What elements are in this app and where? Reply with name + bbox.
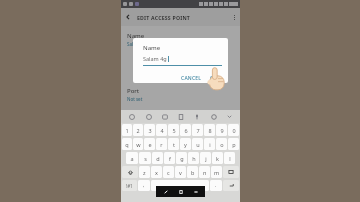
staticText: Port bbox=[127, 87, 140, 95]
button[interactable]: Sticker bbox=[160, 112, 170, 122]
button[interactable]: c bbox=[163, 166, 174, 178]
button[interactable]: Settings bbox=[209, 112, 219, 122]
button[interactable]: p bbox=[228, 138, 239, 150]
button[interactable]: Keyboard bbox=[127, 112, 137, 122]
button[interactable]: l bbox=[224, 152, 235, 164]
button[interactable]: Space bbox=[151, 180, 209, 191]
staticText: 1 bbox=[125, 127, 129, 134]
staticText: !#1 bbox=[126, 183, 133, 189]
button[interactable]: Backspace bbox=[223, 166, 239, 178]
button[interactable]: Back bbox=[190, 186, 201, 197]
button[interactable]: More options bbox=[228, 11, 240, 23]
button[interactable]: Emoji bbox=[144, 112, 154, 122]
staticText: t bbox=[173, 141, 175, 148]
button[interactable]: n bbox=[199, 166, 210, 178]
button[interactable]: q bbox=[122, 138, 132, 150]
button[interactable]: v bbox=[175, 166, 186, 178]
staticText: u bbox=[196, 141, 200, 148]
button[interactable]: CANCEL bbox=[177, 73, 206, 83]
staticText: OK bbox=[210, 75, 218, 81]
button[interactable]: Recents bbox=[160, 186, 171, 197]
staticText: e bbox=[148, 141, 152, 148]
button[interactable]: 4 bbox=[156, 124, 167, 136]
button[interactable]: 1 bbox=[122, 124, 132, 136]
staticText: n bbox=[203, 169, 207, 176]
button[interactable]: a bbox=[126, 152, 138, 164]
button[interactable]: g bbox=[176, 152, 187, 164]
button[interactable]: 7 bbox=[192, 124, 203, 136]
staticText: a bbox=[130, 155, 134, 162]
staticText: x bbox=[155, 169, 158, 176]
button[interactable]: z bbox=[139, 166, 150, 178]
button[interactable]: . bbox=[210, 180, 222, 191]
button[interactable]: 8 bbox=[204, 124, 215, 136]
staticText: i bbox=[209, 141, 211, 148]
button[interactable]: Salam 4g bbox=[143, 55, 222, 62]
staticText: 4 bbox=[160, 127, 164, 134]
button[interactable]: m bbox=[211, 166, 222, 178]
button[interactable]: k bbox=[212, 152, 223, 164]
button[interactable]: d bbox=[152, 152, 163, 164]
staticText: m bbox=[214, 169, 220, 176]
button[interactable]: Hide keyboard bbox=[225, 112, 234, 121]
staticText: Name bbox=[127, 32, 145, 40]
staticText: y bbox=[184, 141, 187, 148]
button[interactable]: Home bbox=[175, 186, 186, 197]
button[interactable]: 6 bbox=[180, 124, 191, 136]
staticText: 2 bbox=[136, 127, 140, 134]
staticText: g bbox=[180, 155, 184, 162]
button[interactable]: i bbox=[204, 138, 215, 150]
button[interactable]: t bbox=[168, 138, 179, 150]
button[interactable]: h bbox=[188, 152, 199, 164]
button[interactable]: 2 bbox=[133, 124, 143, 136]
button[interactable]: e bbox=[144, 138, 155, 150]
staticText: EDIT ACCESS POINT bbox=[137, 14, 191, 21]
staticText: 3 bbox=[148, 127, 152, 134]
button[interactable]: Back bbox=[121, 10, 135, 24]
staticText: d bbox=[156, 155, 160, 162]
button[interactable]: s bbox=[139, 152, 151, 164]
staticText: p bbox=[232, 141, 236, 148]
button[interactable]: Clipboard bbox=[176, 112, 186, 122]
staticText: o bbox=[220, 141, 224, 148]
button[interactable]: 9 bbox=[216, 124, 227, 136]
button[interactable]: Name bbox=[121, 30, 240, 49]
button[interactable]: OK bbox=[206, 73, 222, 83]
button[interactable]: 3 bbox=[144, 124, 155, 136]
staticText: 9 bbox=[220, 127, 224, 134]
button[interactable]: w bbox=[133, 138, 143, 150]
button[interactable]: , bbox=[138, 180, 150, 191]
button[interactable]: 5 bbox=[168, 124, 179, 136]
button[interactable]: Port bbox=[121, 85, 240, 104]
button[interactable]: o bbox=[216, 138, 227, 150]
staticText: Not set bbox=[127, 96, 143, 102]
staticText: 8 bbox=[208, 127, 212, 134]
staticText: s bbox=[144, 155, 147, 162]
staticText: r bbox=[160, 141, 163, 148]
button[interactable]: !#1 bbox=[122, 180, 137, 191]
button[interactable]: Enter bbox=[223, 180, 239, 191]
staticText: l bbox=[229, 155, 231, 162]
staticText: 7 bbox=[196, 127, 200, 134]
staticText: k bbox=[216, 155, 219, 162]
staticText: q bbox=[125, 141, 129, 148]
button[interactable]: 0 bbox=[228, 124, 239, 136]
button[interactable]: Shift bbox=[122, 166, 138, 178]
staticText: 6 bbox=[184, 127, 188, 134]
staticText: c bbox=[167, 169, 170, 176]
button[interactable]: b bbox=[187, 166, 198, 178]
staticText: Salam 4g bbox=[127, 41, 147, 47]
staticText: z bbox=[143, 169, 146, 176]
button[interactable]: x bbox=[151, 166, 162, 178]
staticText: , bbox=[143, 182, 145, 189]
button[interactable]: f bbox=[164, 152, 175, 164]
button[interactable]: r bbox=[156, 138, 167, 150]
button[interactable]: u bbox=[192, 138, 203, 150]
button[interactable]: j bbox=[200, 152, 211, 164]
staticText: Salam 4g bbox=[143, 55, 167, 62]
staticText: CANCEL bbox=[181, 75, 202, 81]
button[interactable]: Voice input bbox=[192, 112, 202, 122]
button[interactable]: y bbox=[180, 138, 191, 150]
staticText: h bbox=[192, 155, 196, 162]
staticText: 5 bbox=[172, 127, 176, 134]
